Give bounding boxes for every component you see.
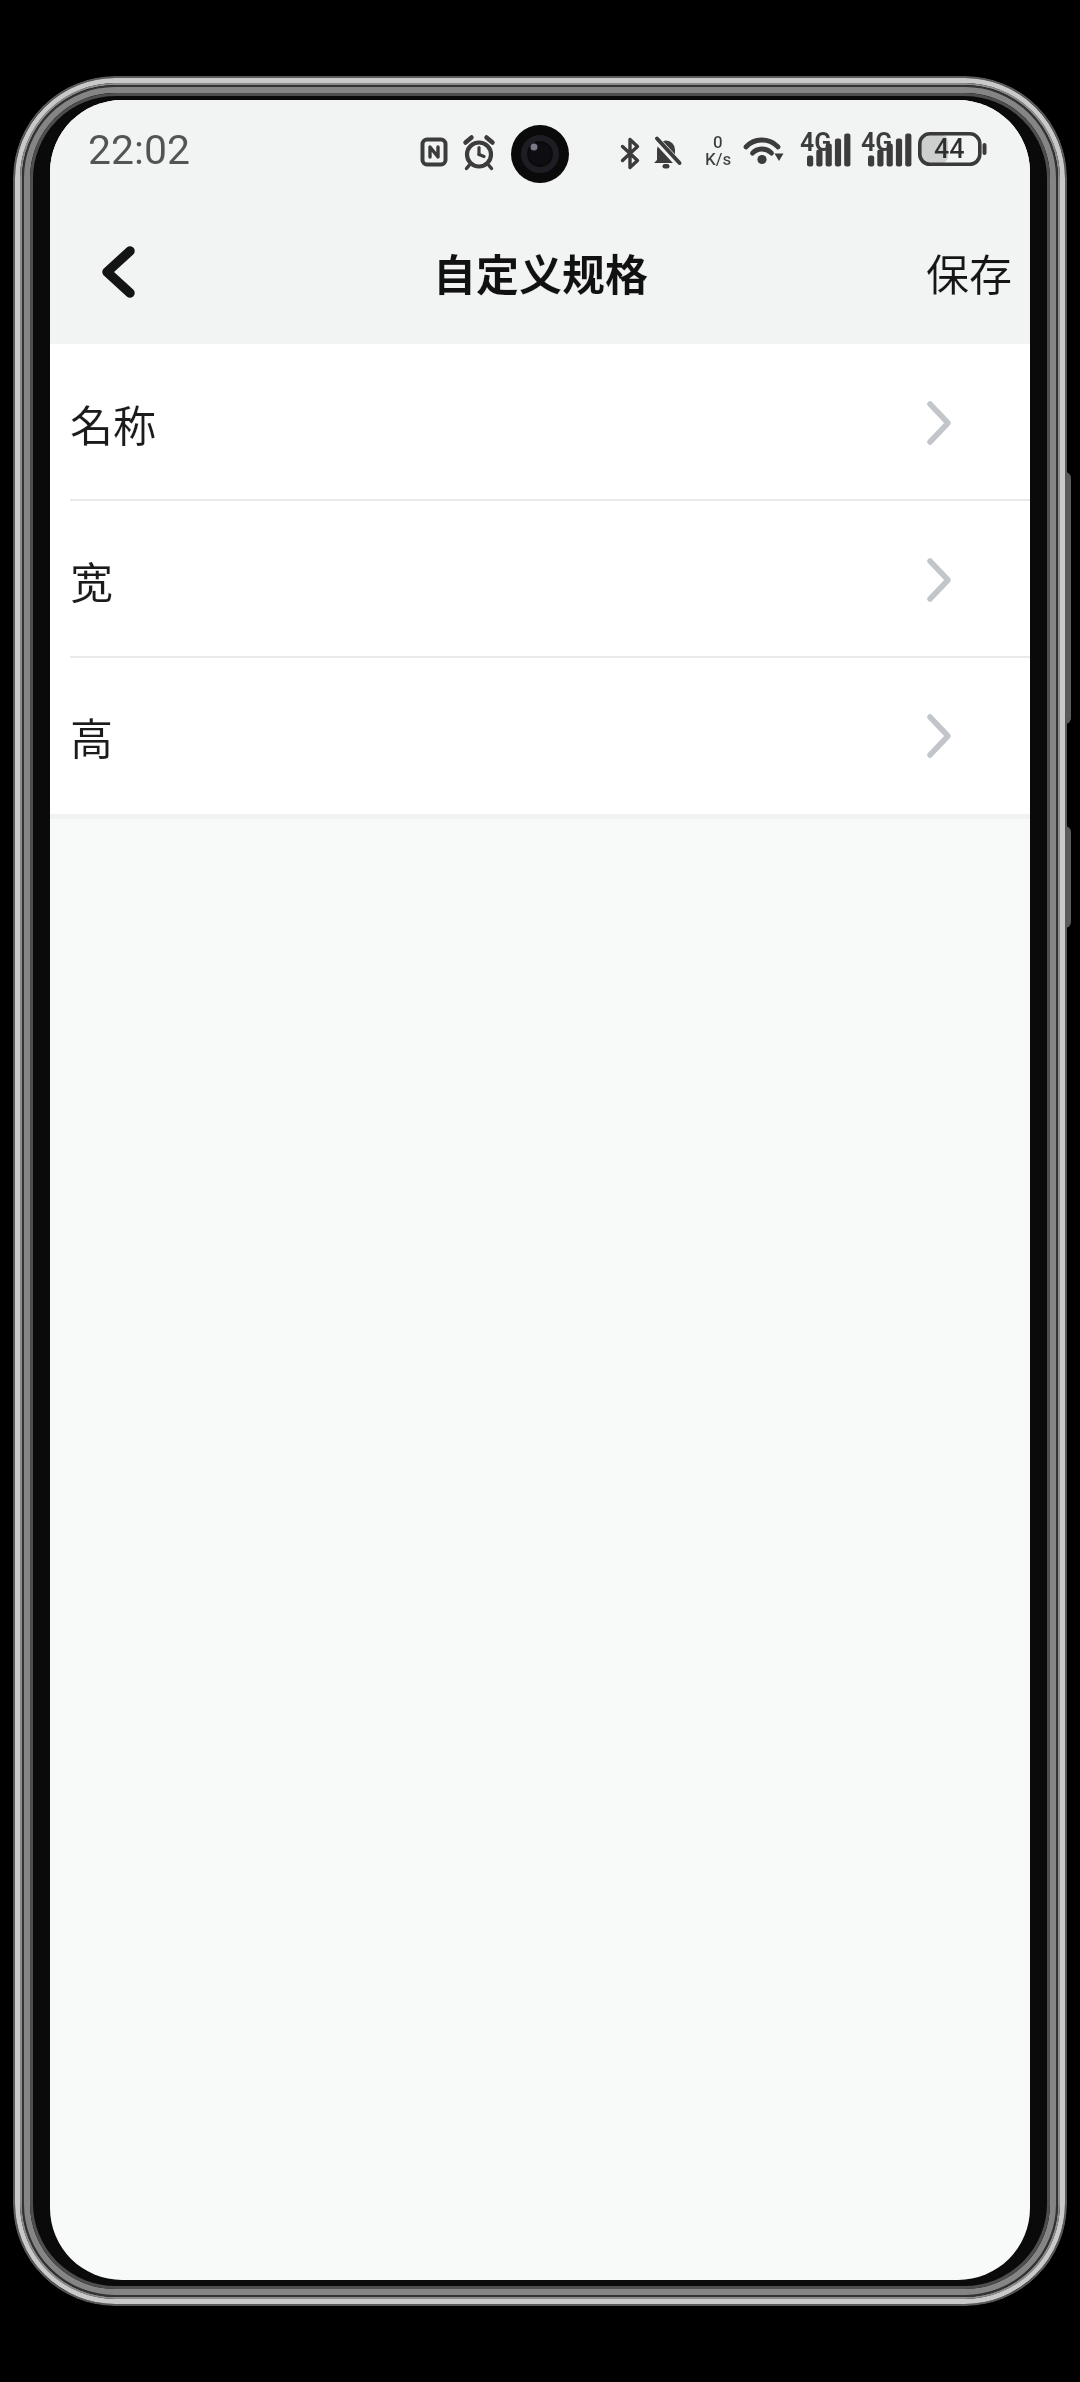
staticText: 44: [934, 133, 965, 165]
staticText: 4G: [800, 128, 832, 157]
button[interactable]: 名称: [50, 344, 1030, 501]
staticText: 宽: [70, 549, 113, 611]
button[interactable]: 宽: [50, 501, 1030, 658]
staticText: 22:02: [88, 126, 191, 174]
staticText: 自定义规格: [433, 241, 648, 303]
staticText: 高: [70, 705, 113, 767]
staticText: K/s: [705, 149, 732, 169]
staticText: 保存: [926, 241, 1012, 303]
button[interactable]: 保存: [926, 241, 1012, 303]
button[interactable]: [94, 248, 142, 296]
staticText: 4G: [861, 128, 893, 157]
button[interactable]: 高: [50, 658, 1030, 814]
staticText: 0: [713, 132, 723, 152]
staticText: 名称: [70, 392, 156, 454]
